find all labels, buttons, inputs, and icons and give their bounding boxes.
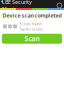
staticText: LBE Security Master [2,0,32,13]
staticText: Scan [24,34,39,43]
staticText: Device scan completed [2,12,61,19]
button[interactable]: Settings [57,3,62,8]
button[interactable]: Scan [2,34,62,44]
staticText: 3 risks found Tap to resolve [19,21,43,32]
